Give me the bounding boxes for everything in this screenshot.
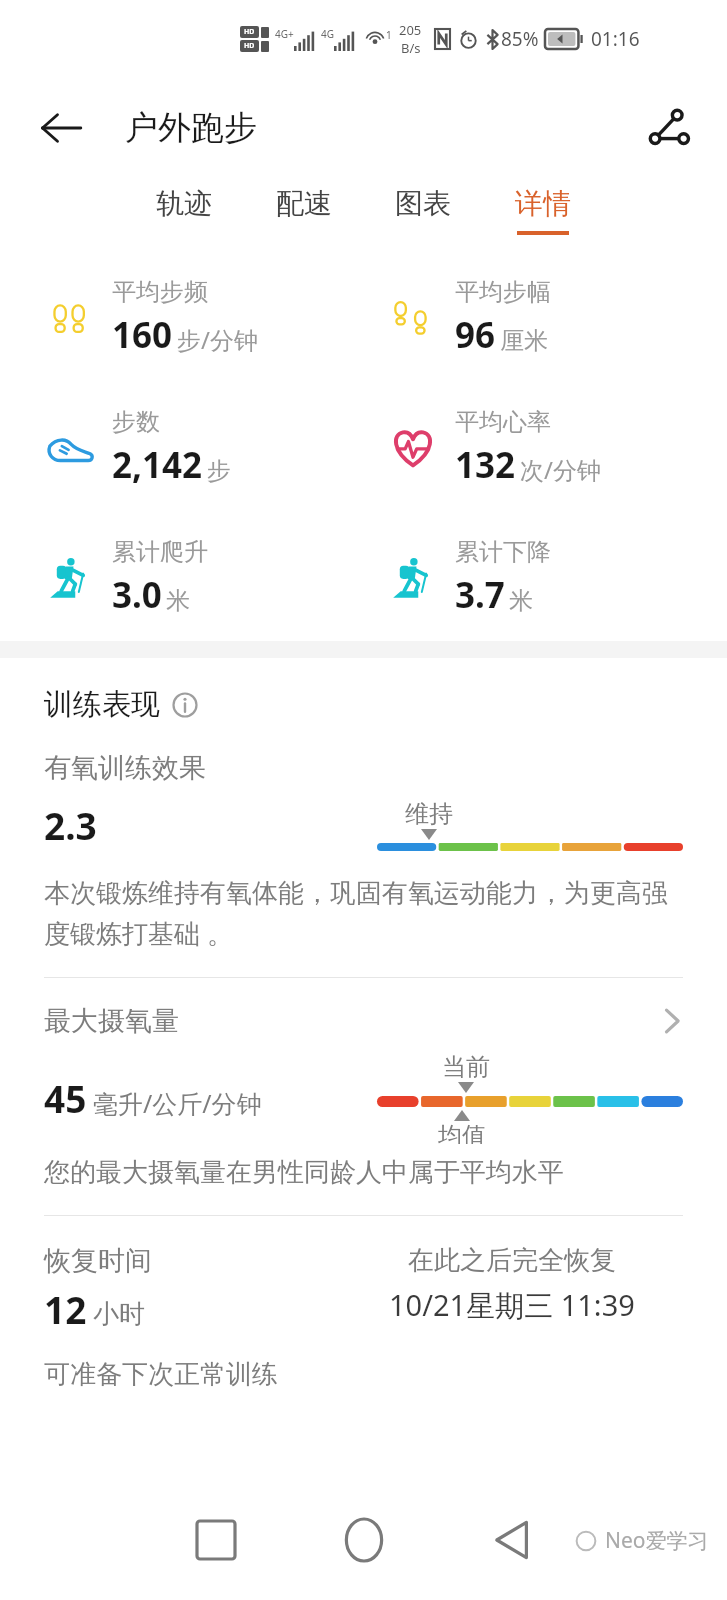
button[interactable]: 详情	[509, 178, 577, 243]
staticText: 平均心率	[455, 407, 551, 437]
staticText: 本次锻炼维持有氧体能，巩固有氧运动能力，为更高强度锻炼打基础 。	[44, 877, 683, 951]
staticText: 3.0	[112, 571, 162, 619]
staticText: 有氧训练效果	[44, 751, 206, 785]
button[interactable]: 图表	[389, 178, 457, 243]
staticText: 步/分钟	[177, 323, 258, 356]
staticText: 步	[207, 456, 231, 486]
button[interactable]: Recent apps	[168, 1492, 264, 1588]
staticText: 85%	[501, 26, 539, 52]
staticText: B/s	[401, 39, 421, 57]
staticText: 配速	[276, 186, 332, 221]
staticText: 205	[399, 21, 422, 39]
staticText: 次/分钟	[520, 453, 601, 486]
staticText: 2,142	[112, 441, 203, 489]
staticText: 详情	[515, 186, 571, 221]
staticText: 图表	[395, 186, 451, 221]
staticText: 均值	[438, 1121, 486, 1144]
staticText: 132	[455, 441, 516, 489]
staticText: 当前	[442, 1052, 490, 1082]
button[interactable]: Back	[464, 1492, 560, 1588]
staticText: 3.7	[455, 571, 505, 619]
staticText: 平均步频	[112, 277, 208, 307]
staticText: 2.3	[44, 800, 97, 850]
button[interactable]: 最大摄氧量	[44, 1004, 683, 1038]
staticText: 1	[386, 28, 392, 42]
staticText: 累计爬升	[112, 537, 208, 567]
staticText: 96	[455, 311, 496, 359]
staticText: 您的最大摄氧量在男性同龄人中属于平均水平	[44, 1156, 564, 1189]
staticText: 12	[44, 1284, 87, 1334]
staticText: 米	[166, 586, 190, 616]
staticText: 平均步幅	[455, 277, 551, 307]
staticText: 在此之后完全恢复	[408, 1244, 616, 1277]
button[interactable]: 轨迹	[150, 178, 218, 243]
staticText: Neo爱学习	[605, 1526, 709, 1555]
staticText: 最大摄氧量	[44, 1004, 179, 1038]
staticText: 160	[112, 311, 173, 359]
staticText: HD	[244, 41, 255, 51]
staticText: 45	[44, 1073, 87, 1123]
staticText: 维持	[405, 799, 453, 829]
staticText: 毫升/公斤/分钟	[93, 1086, 262, 1120]
staticText: 累计下降	[455, 537, 551, 567]
staticText: 步数	[112, 407, 160, 437]
staticText: HD	[244, 27, 255, 37]
staticText: 小时	[93, 1298, 145, 1331]
staticText: 训练表现	[44, 686, 160, 723]
staticText: 米	[509, 586, 533, 616]
button[interactable]: 训练表现	[44, 686, 198, 723]
staticText: 4G+	[275, 27, 294, 41]
button[interactable]: Share	[635, 95, 701, 161]
staticText: 厘米	[500, 326, 548, 356]
staticText: 可准备下次正常训练	[44, 1358, 278, 1391]
staticText: 01:16	[591, 26, 640, 52]
staticText: 4G	[321, 27, 334, 41]
button[interactable]: 配速	[270, 178, 338, 243]
button[interactable]: Back	[30, 97, 92, 159]
staticText: 恢复时间	[44, 1244, 152, 1278]
button[interactable]: Home	[316, 1492, 412, 1588]
staticText: 户外跑步	[125, 107, 257, 149]
staticText: 10/21星期三 11:39	[389, 1285, 635, 1325]
staticText: 轨迹	[156, 186, 212, 221]
